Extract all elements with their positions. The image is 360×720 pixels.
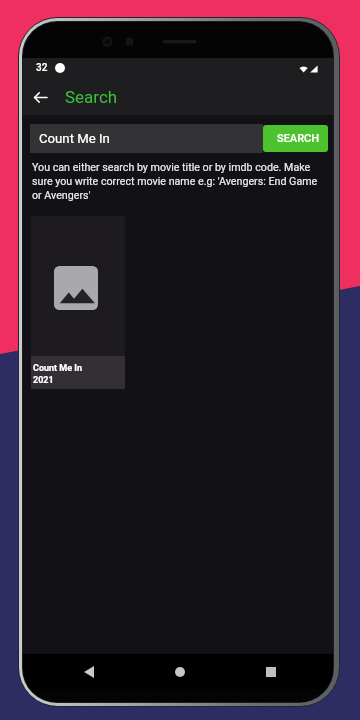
staticText: SEARCH bbox=[277, 132, 320, 145]
staticText: You can either search by movie title or … bbox=[32, 161, 324, 202]
button[interactable]: Recents bbox=[225, 654, 316, 689]
button[interactable]: Count Me In bbox=[31, 216, 125, 389]
staticText: Count Me In bbox=[39, 131, 110, 146]
staticText: Count Me In bbox=[33, 363, 83, 374]
button[interactable]: Back bbox=[43, 654, 134, 689]
staticText: 32 bbox=[36, 62, 48, 74]
staticText: 2021 bbox=[33, 375, 54, 386]
button[interactable]: SEARCH bbox=[263, 125, 328, 152]
button[interactable]: Home bbox=[134, 654, 225, 689]
button[interactable]: Count Me In bbox=[39, 124, 263, 153]
staticText: Search bbox=[65, 87, 118, 107]
button[interactable]: Back bbox=[25, 82, 55, 112]
